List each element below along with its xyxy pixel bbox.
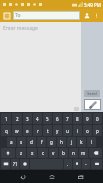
button[interactable]: More options (92, 11, 101, 20)
staticText: l (91, 139, 93, 145)
button[interactable]: Emoji (20, 159, 29, 169)
button[interactable]: 0 (93, 113, 102, 124)
button[interactable]: t (43, 125, 52, 136)
button[interactable]: g (47, 137, 56, 147)
button[interactable]: n (69, 148, 78, 158)
staticText: 0 (96, 116, 99, 122)
button[interactable]: p (93, 125, 102, 136)
button[interactable]: l (87, 137, 96, 147)
button[interactable]: Send (84, 90, 100, 97)
staticText: ?1 (13, 161, 18, 167)
staticText: 1 (5, 116, 8, 122)
button[interactable]: Enter message (3, 25, 81, 105)
staticText: a (10, 139, 13, 145)
staticText: 4 (36, 116, 39, 122)
staticText: y (56, 128, 59, 134)
staticText: h (60, 139, 63, 145)
button[interactable]: c (38, 148, 48, 158)
staticText: x (31, 150, 34, 156)
staticText: Send (87, 91, 97, 96)
button[interactable]: 7 (63, 113, 72, 124)
button[interactable]: d (27, 137, 36, 147)
button[interactable]: k (77, 137, 86, 147)
staticText: d (30, 139, 33, 145)
button[interactable]: m (79, 148, 88, 158)
staticText: c (42, 150, 45, 156)
button[interactable]: f (37, 137, 46, 147)
staticText: 9 (86, 116, 89, 122)
staticText: n (72, 150, 75, 156)
button[interactable]: v (49, 148, 58, 158)
button[interactable]: 8 (73, 113, 82, 124)
button[interactable]: a (7, 137, 16, 147)
button[interactable]: Attach (84, 99, 101, 110)
staticText: j (71, 139, 73, 145)
button[interactable]: Add contact (82, 11, 92, 21)
staticText: i (77, 128, 79, 134)
staticText: z (20, 150, 23, 156)
button[interactable]: Enter (91, 159, 102, 169)
button[interactable]: Voice input (73, 159, 81, 169)
staticText: . (67, 161, 69, 167)
button[interactable]: 2 (12, 113, 22, 124)
button[interactable]: b (59, 148, 68, 158)
staticText: p (96, 128, 99, 134)
button[interactable]: 9 (83, 113, 92, 124)
button[interactable]: h (57, 137, 66, 147)
button[interactable]: Recents (74, 170, 87, 183)
staticText: 2 (16, 116, 19, 122)
staticText: To (15, 12, 21, 19)
button[interactable]: 1 (1, 113, 11, 124)
staticText: 7 (66, 116, 69, 122)
button[interactable]: x (27, 148, 37, 158)
staticText: g (50, 139, 53, 145)
button[interactable]: y (53, 125, 62, 136)
staticText: Enter message (3, 25, 38, 32)
button[interactable]: 3 (23, 113, 32, 124)
staticText: - (85, 161, 87, 167)
staticText: 3 (26, 116, 29, 122)
staticText: w (15, 128, 19, 134)
button[interactable]: . (64, 159, 72, 169)
button[interactable]: Home (45, 170, 58, 183)
staticText: e (26, 128, 29, 134)
button[interactable]: u (63, 125, 72, 136)
button[interactable]: Switch keyboard (1, 159, 10, 169)
staticText: 5:49 PM (84, 2, 101, 8)
button[interactable]: ?1 (11, 159, 19, 169)
button[interactable]: z (16, 148, 26, 158)
staticText: 5 (46, 116, 49, 122)
staticText: 6 (56, 116, 59, 122)
staticText: m (81, 150, 86, 156)
staticText: s (20, 139, 23, 145)
button[interactable]: 5 (43, 113, 52, 124)
button[interactable]: e (23, 125, 32, 136)
staticText: q (5, 128, 8, 134)
button[interactable]: s (17, 137, 26, 147)
button[interactable]: q (1, 125, 11, 136)
staticText: u (66, 128, 69, 134)
button[interactable]: Shift (1, 148, 15, 158)
staticText: t (47, 128, 49, 134)
staticText: r (37, 128, 39, 134)
button[interactable]: 6 (53, 113, 62, 124)
button[interactable]: Back (16, 170, 29, 183)
staticText: v (52, 150, 55, 156)
staticText: 8 (76, 116, 79, 122)
button[interactable]: r (33, 125, 42, 136)
button[interactable]: Keypad (2, 11, 11, 20)
button[interactable]: - (82, 159, 90, 169)
button[interactable]: w (12, 125, 22, 136)
button[interactable]: o (83, 125, 92, 136)
button[interactable]: To (15, 11, 80, 20)
button[interactable]: Backspace (89, 148, 102, 158)
button[interactable]: i (73, 125, 82, 136)
button[interactable]: 4 (33, 113, 42, 124)
staticText: f (41, 139, 43, 145)
staticText: b (62, 150, 65, 156)
staticText: k (80, 139, 83, 145)
staticText: o (86, 128, 89, 134)
button[interactable]: j (67, 137, 76, 147)
